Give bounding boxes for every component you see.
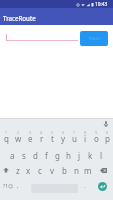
staticText: 1 [5,130,8,135]
staticText: u [72,133,77,144]
button[interactable]: k [85,148,96,162]
button[interactable]: Period [80,180,90,192]
staticText: q [4,133,9,144]
staticText: t [51,133,54,144]
staticText: i [84,133,87,144]
staticText: b [62,165,67,176]
button[interactable]: 8 [80,130,91,144]
staticText: 9 [95,130,98,135]
staticText: 3 [29,130,32,135]
button[interactable]: s [18,148,30,162]
button[interactable]: m [82,163,94,177]
staticText: y [61,133,66,144]
button[interactable]: Backspace [94,163,113,177]
button[interactable]: Symbols [1,180,16,192]
button[interactable]: Host name input [5,30,78,41]
staticText: TRACE [88,36,101,42]
button[interactable]: 2 [12,130,24,144]
button[interactable]: 9 [91,130,102,144]
staticText: o [94,133,99,144]
button[interactable]: v [46,163,58,177]
button[interactable]: TRACE [80,31,108,46]
staticText: j [78,150,81,161]
staticText: c [38,165,42,176]
button[interactable]: 0 [102,130,113,144]
button[interactable]: z [12,163,23,177]
button[interactable]: 3 [24,130,36,144]
staticText: 4 [40,130,43,135]
staticText: 7 [73,130,76,135]
staticText: p [105,133,110,144]
staticText: e [28,133,33,144]
button[interactable]: Shift [0,163,12,177]
staticText: d [33,150,38,161]
staticText: 8 [84,130,87,135]
staticText: z [16,165,20,176]
staticText: . [84,182,86,190]
staticText: 10:43 [95,1,108,8]
button[interactable]: a [6,148,18,162]
staticText: 6 [62,130,65,135]
staticText: 0 [106,130,109,135]
staticText: f [45,150,48,161]
staticText: k [88,150,93,161]
button[interactable]: j [74,148,85,162]
button[interactable]: g [52,148,63,162]
button[interactable]: Voice input [101,119,111,129]
staticText: h [66,150,71,161]
staticText: ?1☺ [3,183,14,190]
button[interactable]: 7 [69,130,80,144]
staticText: x [26,165,31,176]
staticText: 2 [17,130,20,135]
button[interactable]: x [23,163,34,177]
button[interactable]: 4 [36,130,47,144]
staticText: g [55,150,60,161]
staticText: m [84,165,92,176]
button[interactable]: Enter [98,182,107,191]
button[interactable]: 1 [0,130,12,144]
button[interactable]: f [41,148,52,162]
button[interactable]: 5 [47,130,58,144]
staticText: 5 [51,130,54,135]
button[interactable]: b [58,163,70,177]
staticText: n [74,165,79,176]
button[interactable]: l [96,148,107,162]
button[interactable]: n [70,163,82,177]
staticText: s [22,150,26,161]
button[interactable]: c [34,163,46,177]
staticText: , [17,182,19,190]
button[interactable]: Comma [13,180,23,192]
button[interactable]: h [63,148,74,162]
button[interactable]: d [30,148,41,162]
staticText: a [10,150,15,161]
staticText: v [50,165,55,176]
staticText: w [15,133,22,144]
staticText: l [100,150,103,161]
staticText: TraceRoute [3,14,36,22]
staticText: r [40,133,44,144]
button[interactable]: 6 [58,130,69,144]
